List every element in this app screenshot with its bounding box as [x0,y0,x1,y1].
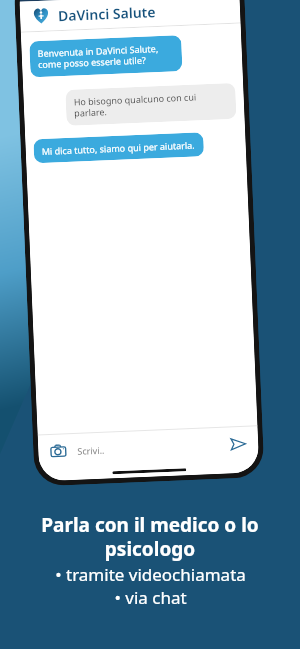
staticText: Parla con il medico o lo psicologo [41,512,259,561]
button[interactable]: Ho bisogno qualcuno con cui parlare. [65,83,237,126]
other: DaVinci Salute logo [32,6,50,25]
button[interactable]: DaVinci Salute logo [19,0,241,32]
staticText: Ho bisogno qualcuno con cui parlare. [73,89,228,120]
staticText: DaVinci Salute [58,2,156,25]
staticText: Mi dica tutto, siamo qui per aiutarla. [41,139,195,157]
button[interactable]: Allega foto [48,441,69,462]
staticText: Benvenuta in DaVinci Salute, come posso … [37,41,174,71]
staticText: • tramite videochiamata [55,563,246,586]
button[interactable]: Benvenuta in DaVinci Salute, come posso … [29,35,183,77]
button[interactable]: Mi dica tutto, siamo qui per aiutarla. [33,132,204,163]
staticText: • via chat [114,586,187,609]
staticText: Scrivi.. [77,444,106,457]
button[interactable]: Invia [228,434,249,454]
